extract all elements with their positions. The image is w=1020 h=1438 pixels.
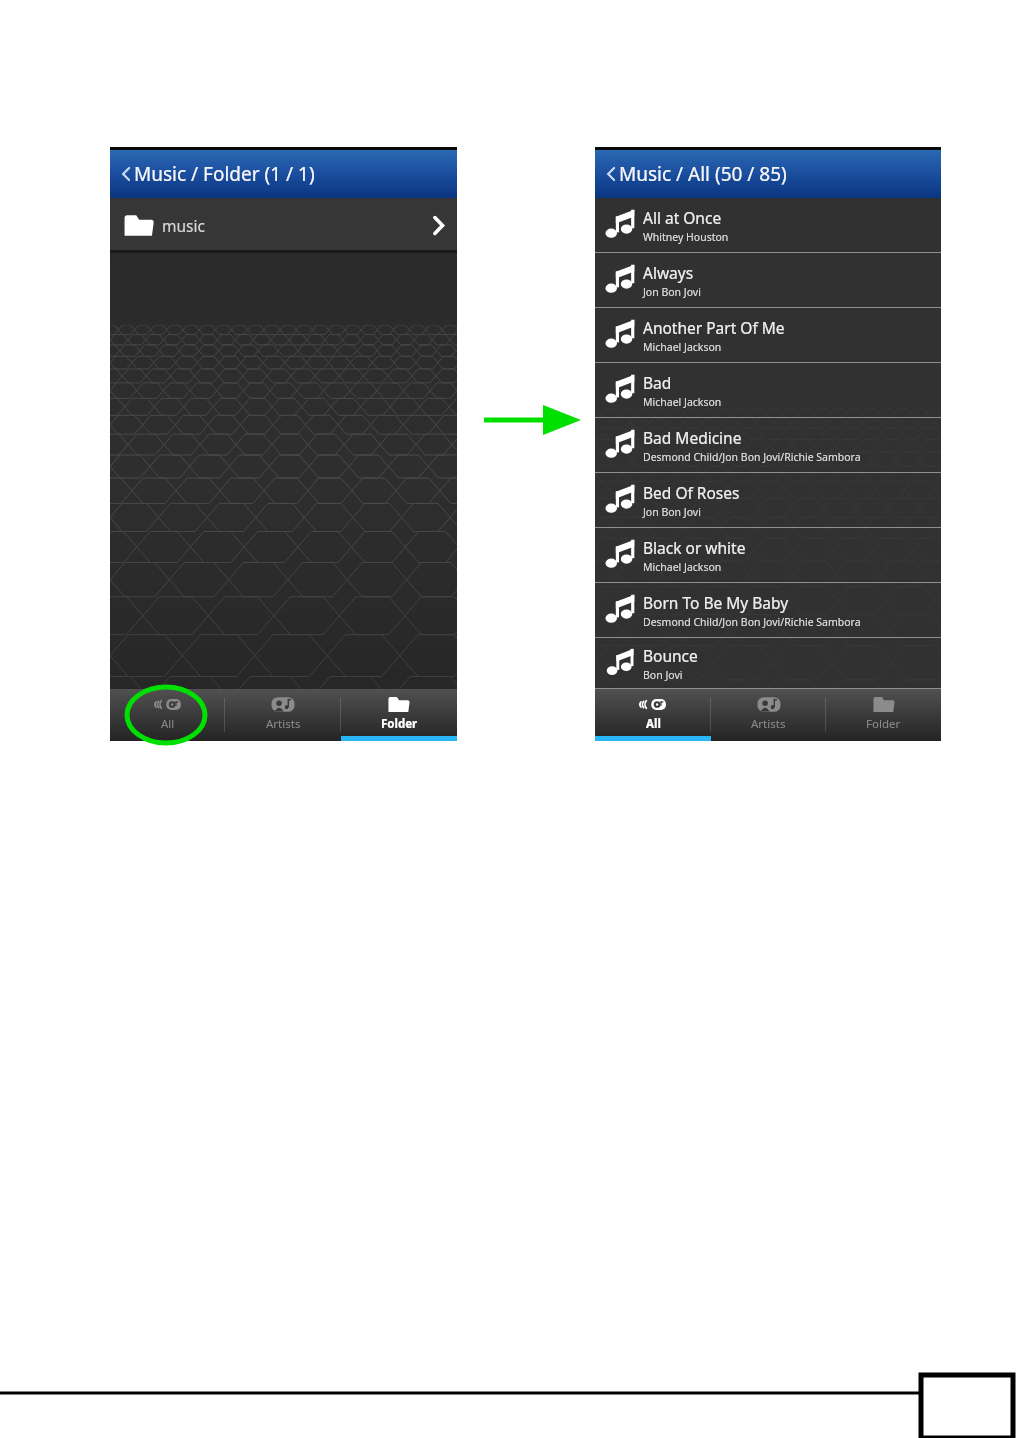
- staticText: Artists: [751, 716, 786, 732]
- staticText: music: [162, 215, 425, 236]
- button[interactable]: Always: [595, 253, 941, 308]
- button[interactable]: Folder: [341, 689, 457, 741]
- button[interactable]: Back: [599, 164, 619, 184]
- staticText: All: [161, 716, 175, 732]
- staticText: Artists: [266, 716, 301, 732]
- staticText: Bon Jovi: [643, 668, 683, 682]
- staticText: Desmond Child/Jon Bon Jovi/Richie Sambor…: [643, 615, 861, 629]
- button[interactable]: Bed Of Roses: [595, 473, 941, 528]
- staticText: Bounce: [643, 645, 698, 666]
- staticText: Born To Be My Baby: [643, 592, 789, 613]
- button[interactable]: All: [595, 689, 711, 741]
- button[interactable]: music: [110, 198, 457, 253]
- staticText: All at Once: [643, 207, 722, 228]
- button[interactable]: Bad: [595, 363, 941, 418]
- staticText: Folder: [381, 716, 418, 732]
- staticText: Black or white: [643, 537, 746, 558]
- staticText: Michael Jackson: [643, 560, 722, 574]
- button[interactable]: Folder: [826, 689, 941, 741]
- staticText: Bed Of Roses: [643, 482, 740, 503]
- staticText: Another Part Of Me: [643, 317, 785, 338]
- staticText: Jon Bon Jovi: [643, 505, 701, 519]
- button[interactable]: Artists: [225, 689, 341, 741]
- button[interactable]: Black or white: [595, 528, 941, 583]
- staticText: Jon Bon Jovi: [643, 285, 701, 299]
- button[interactable]: Bad Medicine: [595, 418, 941, 473]
- staticText: Bad: [643, 372, 672, 393]
- staticText: Always: [643, 262, 694, 283]
- staticText: Whitney Houston: [643, 230, 729, 244]
- button[interactable]: Back: [114, 164, 134, 184]
- button[interactable]: All at Once: [595, 198, 941, 253]
- staticText: Folder: [866, 716, 901, 732]
- button[interactable]: Artists: [711, 689, 826, 741]
- button[interactable]: Another Part Of Me: [595, 308, 941, 363]
- button[interactable]: Born To Be My Baby: [595, 583, 941, 638]
- button[interactable]: All: [110, 689, 225, 741]
- staticText: Michael Jackson: [643, 340, 722, 354]
- staticText: Bad Medicine: [643, 427, 742, 448]
- staticText: All: [646, 716, 661, 732]
- staticText: Michael Jackson: [643, 395, 722, 409]
- staticText: Music / Folder (1 / 1): [134, 161, 315, 187]
- staticText: Music / All (50 / 85): [619, 161, 787, 187]
- staticText: Desmond Child/Jon Bon Jovi/Richie Sambor…: [643, 450, 861, 464]
- button[interactable]: Bounce: [595, 638, 941, 689]
